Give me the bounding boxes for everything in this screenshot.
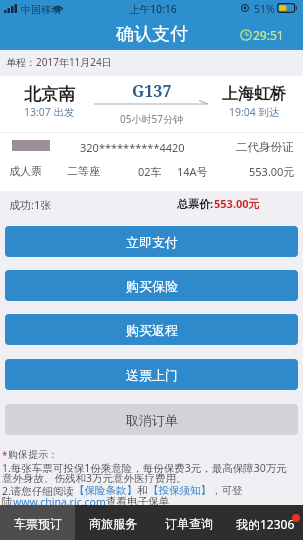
staticText: 北京南 xyxy=(24,84,75,105)
staticText: 上午10:16 xyxy=(129,2,177,16)
staticText: 【保险条款】 xyxy=(74,484,137,497)
staticText: 单程：2017年11月24日 xyxy=(6,55,112,69)
staticText: 我的12306 xyxy=(236,516,295,532)
staticText: 确认支付 xyxy=(116,23,188,45)
staticText: 553.00元 xyxy=(214,196,260,211)
staticText: 14A号 xyxy=(177,164,208,179)
staticText: 19:04 到达 xyxy=(229,105,280,119)
staticText: 553.00元 xyxy=(249,164,295,179)
staticText: 1.每张车票可投保1份乘意险，每份保费3元，最高保障30万元 xyxy=(2,461,287,475)
staticText: 陆 xyxy=(2,495,13,508)
button[interactable]: 取消订单 xyxy=(5,404,298,435)
staticText: 02车 xyxy=(138,164,162,179)
staticText: 05小时57分钟 xyxy=(120,112,183,126)
staticText: 订单查询 xyxy=(165,516,213,531)
staticText: ，可登 xyxy=(211,484,243,497)
staticText: 车票预订 xyxy=(14,516,62,531)
staticText: 购保提示： xyxy=(8,448,58,461)
staticText: 总票价: xyxy=(177,196,214,211)
staticText: www.china.ric.com xyxy=(13,495,106,509)
staticText: 购买保险 xyxy=(126,278,178,294)
staticText: 商旅服务 xyxy=(89,516,137,531)
staticText: 2.请您仔细阅读 xyxy=(2,484,74,498)
button[interactable]: 订单查询 xyxy=(151,505,227,540)
staticText: 二代身份证 xyxy=(236,140,294,154)
button[interactable]: 车票预订 xyxy=(0,505,75,540)
staticText: 意外身故、伤残和3万元意外医疗费用。 xyxy=(2,471,187,485)
staticText: 上海虹桥 xyxy=(222,84,286,104)
staticText: 【投保须知】 xyxy=(148,484,211,497)
staticText: 购买返程 xyxy=(126,322,178,338)
button[interactable]: 立即支付 xyxy=(5,226,298,257)
staticText: 取消订单 xyxy=(126,412,178,428)
button[interactable]: 商旅服务 xyxy=(75,505,151,540)
button[interactable]: 购买返程 xyxy=(5,314,298,345)
staticText: 51% xyxy=(254,2,275,16)
staticText: 立即支付 xyxy=(126,234,178,250)
staticText: 查看电子保单 xyxy=(106,495,169,508)
button[interactable]: 送票上门 xyxy=(5,359,298,390)
staticText: 29:51 xyxy=(253,27,284,43)
staticText: 和 xyxy=(137,484,148,497)
staticText: 成人票 xyxy=(9,164,42,178)
staticText: 二等座 xyxy=(67,164,100,178)
staticText: 中国移动 xyxy=(21,3,61,16)
staticText: * xyxy=(2,448,8,462)
button[interactable]: 购买保险 xyxy=(5,270,298,301)
staticText: 13:07 出发 xyxy=(24,105,75,119)
staticText: 送票上门 xyxy=(126,367,178,383)
staticText: 320**********4420 xyxy=(80,140,185,155)
button[interactable]: 我的12306 xyxy=(227,505,303,540)
staticText: G137 xyxy=(132,80,172,102)
staticText: 成功:1张 xyxy=(9,197,52,212)
